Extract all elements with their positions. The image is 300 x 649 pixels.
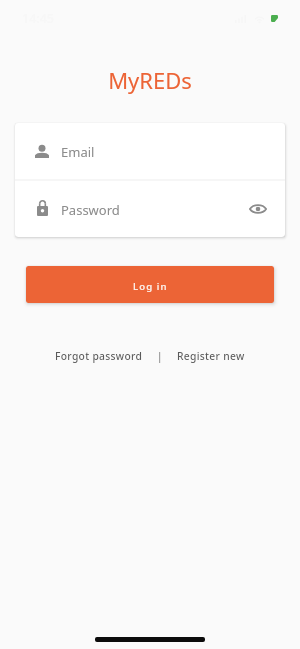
staticText: Log in (133, 280, 168, 293)
staticText: | (157, 349, 163, 363)
button[interactable]: Password (15, 181, 285, 237)
staticText: Forgot password (55, 349, 143, 363)
staticText: Register new (177, 349, 245, 363)
button[interactable]: Show password (247, 198, 269, 220)
button[interactable]: Forgot password (55, 349, 143, 363)
staticText: Email (61, 143, 95, 161)
button[interactable]: Register new (177, 349, 245, 363)
staticText: MyREDs (0, 65, 300, 95)
button[interactable]: Email (15, 123, 285, 179)
staticText: Password (61, 201, 120, 219)
button[interactable]: Log in (26, 266, 274, 303)
